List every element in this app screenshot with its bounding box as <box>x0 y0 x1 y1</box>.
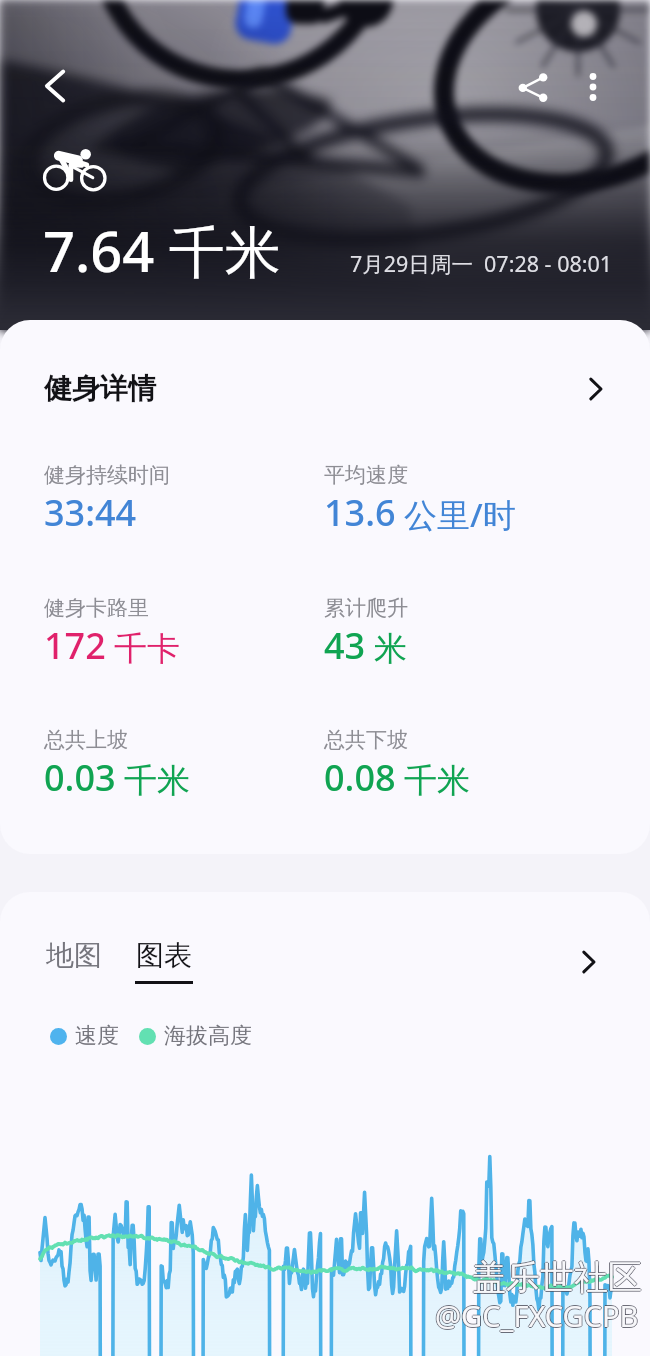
staticText: 平均速度 <box>324 462 408 488</box>
button[interactable]: 健身详情 <box>0 352 650 430</box>
staticText: 盖乐世社区 <box>472 1256 642 1299</box>
staticText: 172 <box>44 621 106 670</box>
staticText: 总共上坡 <box>44 727 128 753</box>
staticText: 地图 <box>46 938 102 973</box>
staticText: 千米 <box>124 760 190 802</box>
staticText: 图表 <box>136 938 192 973</box>
staticText: 千卡 <box>114 628 180 670</box>
staticText: 健身卡路里 <box>44 595 149 621</box>
staticText: 0.08 <box>324 753 396 802</box>
staticText: 健身详情 <box>44 371 156 406</box>
staticText: @GC_FXCGCPB <box>435 1296 639 1335</box>
staticText: 总共下坡 <box>324 727 408 753</box>
staticText: 盖乐世社区 <box>473 1256 643 1299</box>
staticText: 0.03 <box>44 753 116 802</box>
staticText: 33:44 <box>44 488 137 537</box>
staticText: @GC_FXCGCPB <box>434 1296 638 1335</box>
staticText: 盖乐世社区 <box>471 1256 641 1299</box>
button[interactable]: More options <box>568 62 618 112</box>
staticText: 盖乐世社区 <box>472 1255 642 1298</box>
staticText: 公里/时 <box>404 492 516 537</box>
staticText: @GC_FXCGCPB <box>435 1297 639 1336</box>
staticText: 米 <box>374 628 407 670</box>
button[interactable]: Share <box>508 62 558 112</box>
staticText: 7.64 千米 <box>43 212 281 288</box>
staticText: @GC_FXCGCPB <box>435 1295 639 1334</box>
staticText: 健身持续时间 <box>44 462 170 488</box>
staticText: 速度 <box>75 1022 119 1050</box>
staticText: 千米 <box>404 760 470 802</box>
staticText: 13.6 <box>324 488 396 537</box>
staticText: 海拔高度 <box>164 1022 252 1050</box>
staticText: @GC_FXCGCPB <box>436 1296 640 1335</box>
button[interactable]: Open chart <box>566 940 610 984</box>
staticText: 43 <box>324 621 366 670</box>
staticText: 盖乐世社区 <box>472 1257 642 1300</box>
button[interactable]: 地图 <box>42 934 106 977</box>
button[interactable]: 图表 <box>131 934 197 988</box>
staticText: 7月29日周一 07:28 - 08:01 <box>350 249 613 278</box>
button[interactable]: Back <box>31 61 81 111</box>
staticText: 累计爬升 <box>324 595 408 621</box>
